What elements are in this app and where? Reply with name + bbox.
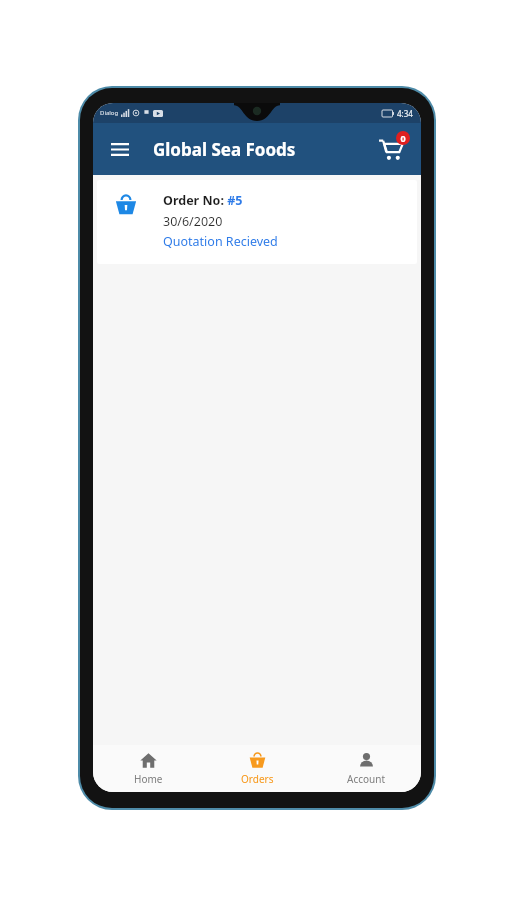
staticText: Account — [347, 772, 386, 786]
staticText: Orders — [241, 772, 274, 786]
button[interactable]: Orders — [203, 745, 312, 792]
staticText: Global Sea Foods — [153, 138, 296, 161]
staticText: 4:34 — [397, 108, 413, 119]
staticText: Home — [134, 772, 163, 786]
button[interactable]: Account — [312, 745, 421, 792]
button[interactable]: Open navigation menu — [102, 131, 138, 167]
staticText: 30/6/2020 — [163, 213, 223, 230]
staticText: Order No: #5 — [163, 192, 243, 209]
button[interactable]: Cart, 0 items — [371, 129, 411, 169]
button[interactable]: Home — [93, 745, 203, 792]
staticText: 0 — [400, 132, 406, 144]
button[interactable]: Order No: #5 — [97, 180, 417, 264]
staticText: Dialog — [100, 109, 119, 117]
staticText: Quotation Recieved — [163, 233, 278, 250]
